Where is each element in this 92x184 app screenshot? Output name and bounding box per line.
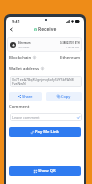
staticText: Leave comment xyxy=(12,115,40,120)
staticText: Share xyxy=(22,94,33,99)
button[interactable]: Blockchain xyxy=(9,54,81,60)
staticText: Ethereum xyxy=(18,41,31,45)
staticText: Copy xyxy=(61,94,71,99)
button[interactable]: Ethereum xyxy=(7,37,82,52)
staticText: Wallet address xyxy=(9,65,40,71)
staticText: Your Wallet xyxy=(18,46,30,49)
staticText: 0x71eeA7Bq8Ugnjmq6ofySVYSbPAN8 FvaNwN xyxy=(12,77,74,86)
staticText: 9:41 xyxy=(12,19,20,24)
staticText: Show QR xyxy=(38,168,56,174)
staticText: Blockchain xyxy=(9,54,32,60)
button[interactable]: 0x71eeA7Bq8Ugnjmq6ofySVYSbPAN8 FvaNwN xyxy=(10,76,82,87)
button[interactable]: Pay Me Link xyxy=(9,127,81,137)
button[interactable]: Share xyxy=(9,92,42,101)
button[interactable]: Copy xyxy=(46,92,82,101)
button[interactable]: Show QR xyxy=(9,166,81,176)
staticText: 0.38823701 ETH xyxy=(60,41,80,45)
staticText: Ethereum xyxy=(60,54,81,60)
staticText: 1 787.05 USD xyxy=(66,46,80,49)
button[interactable]: Leave comment xyxy=(10,113,82,121)
button[interactable]: Back xyxy=(8,26,15,33)
staticText: Pay Me Link xyxy=(35,129,59,135)
staticText: Receive xyxy=(38,26,57,33)
staticText: Comment xyxy=(9,103,30,109)
